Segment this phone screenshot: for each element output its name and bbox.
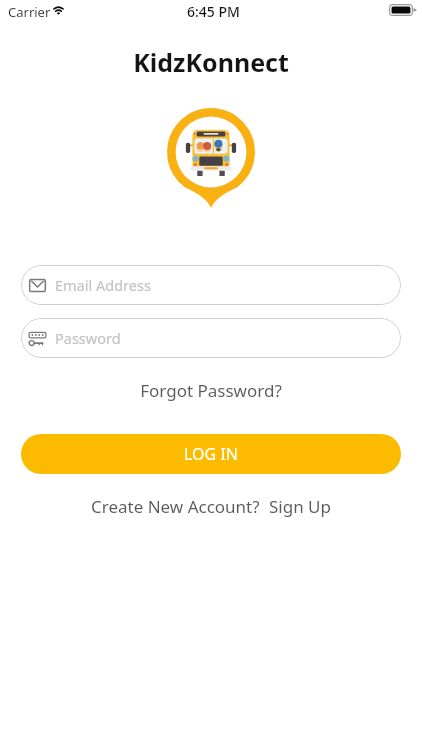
other: Battery full [389,4,417,16]
staticText: Password [55,328,121,348]
staticText: Sign Up [269,495,331,518]
button[interactable]: Email Address [21,265,401,305]
other: KidzKonnect logo [167,108,255,208]
button[interactable]: Forgot Password? [134,377,288,404]
staticText: Create New Account? [91,495,260,518]
staticText: Forgot Password? [140,379,282,402]
button[interactable]: Password [21,318,401,358]
staticText: Carrier [8,3,51,21]
staticText: KidzKonnect [133,45,289,79]
staticText: 6:45 PM [187,2,240,21]
button[interactable]: LOG IN [21,434,401,474]
other: Wi-Fi signal [51,5,66,15]
staticText: Email Address [55,275,151,295]
button[interactable]: Sign Up [269,495,331,518]
staticText: LOG IN [184,443,238,465]
